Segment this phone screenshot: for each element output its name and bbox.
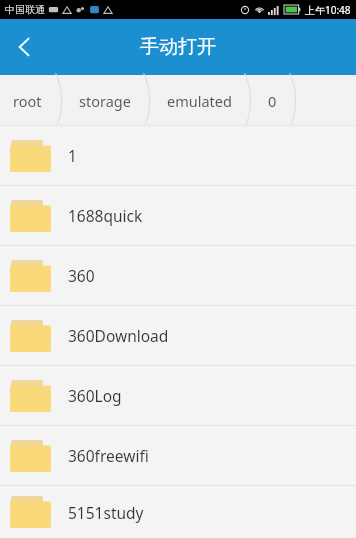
staticText: 360freewifi	[68, 445, 149, 466]
button[interactable]: root	[0, 75, 55, 126]
staticText: emulated	[167, 91, 232, 111]
staticText: 上午10:48	[305, 3, 351, 17]
staticText: 1	[68, 145, 77, 166]
staticText: 360	[68, 265, 95, 286]
staticText: 中国联通	[5, 3, 45, 16]
button[interactable]: 360	[0, 246, 356, 305]
staticText: 1688quick	[68, 205, 143, 226]
staticText: 0	[268, 91, 277, 111]
button[interactable]: storage	[67, 75, 143, 126]
staticText: root	[13, 91, 42, 111]
button[interactable]: 360Log	[0, 366, 356, 425]
staticText: 360Download	[68, 325, 169, 346]
button[interactable]: 360freewifi	[0, 426, 356, 485]
staticText: storage	[79, 91, 131, 111]
staticText: 5151study	[68, 502, 144, 523]
button[interactable]: 1688quick	[0, 186, 356, 245]
button[interactable]: 0	[256, 75, 289, 126]
button[interactable]: Back	[0, 22, 50, 72]
button[interactable]: emulated	[155, 75, 244, 126]
button[interactable]: 360Download	[0, 306, 356, 365]
button[interactable]: 1	[0, 126, 356, 185]
staticText: 360Log	[68, 385, 122, 406]
button[interactable]: 5151study	[0, 486, 356, 538]
staticText: 手动打开	[140, 35, 216, 59]
